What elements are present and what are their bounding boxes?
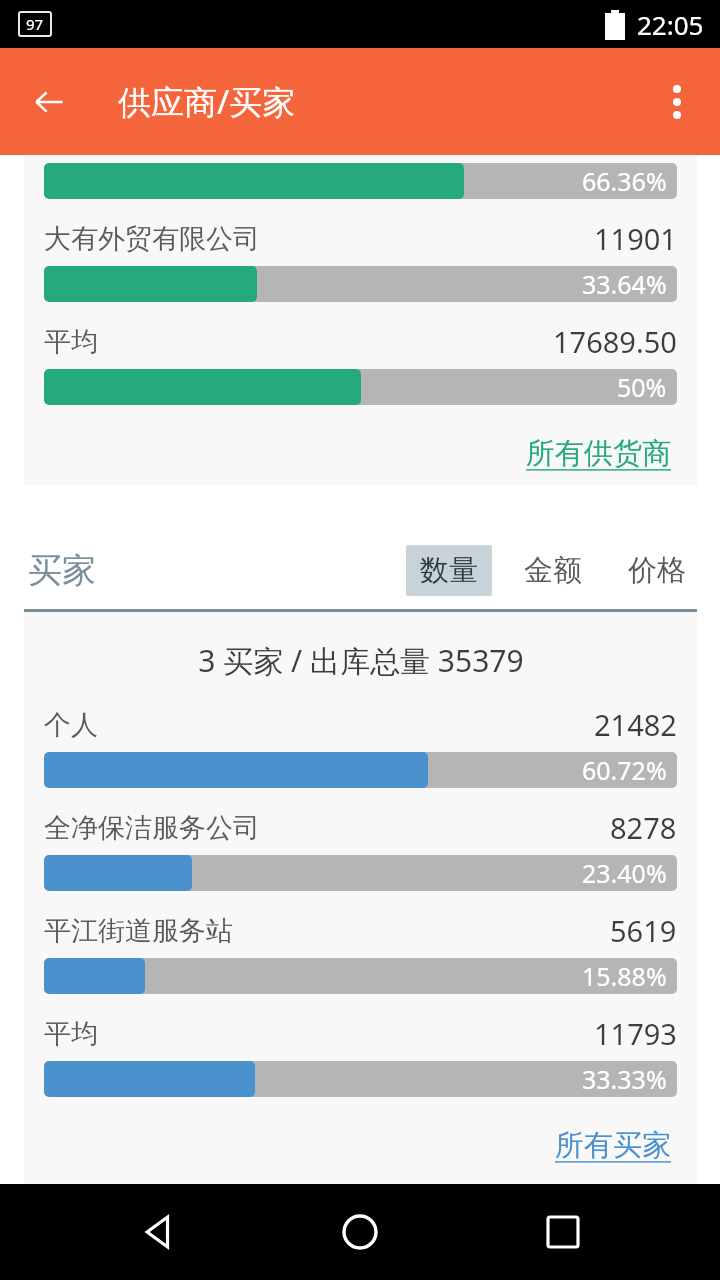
staticText: 50% [617, 370, 667, 404]
staticText: 11793 [594, 1014, 677, 1053]
staticText: 数量 [420, 552, 478, 589]
staticText: 33.33% [582, 1062, 667, 1096]
staticText: 金额 [524, 552, 582, 589]
staticText: 个人 [44, 708, 98, 742]
staticText: 21482 [594, 705, 677, 744]
staticText: 66.36% [582, 164, 667, 198]
staticText: 8278 [610, 808, 677, 847]
staticText: 60.72% [582, 753, 667, 787]
staticText: 平均 [44, 1017, 98, 1051]
button[interactable]: 所有买家 [551, 1123, 675, 1168]
staticText: 所有供货商 [526, 435, 671, 472]
staticText: 97 [26, 14, 44, 34]
staticText: 买家 [28, 549, 96, 592]
button[interactable]: 所有供货商 [522, 431, 675, 476]
staticText: 3 买家 / 出库总量 35379 [198, 640, 524, 681]
staticText: 平均 [44, 325, 98, 359]
button[interactable]: 数量 [406, 545, 492, 596]
staticText: 全净保洁服务公司 [44, 811, 260, 845]
staticText: 15.88% [582, 959, 667, 993]
staticText: 所有买家 [555, 1127, 671, 1164]
button[interactable]: Back [20, 73, 78, 131]
staticText: 供应商/买家 [118, 79, 296, 124]
button[interactable]: More options [648, 73, 706, 131]
button[interactable]: 金额 [510, 545, 596, 596]
staticText: 11901 [594, 219, 677, 258]
staticText: 大有外贸有限公司 [44, 222, 260, 256]
staticText: 17689.50 [553, 322, 677, 361]
staticText: 23.40% [582, 856, 667, 890]
staticText: 22:05 [637, 7, 704, 42]
staticText: 平江街道服务站 [44, 914, 233, 948]
button[interactable]: Recent apps [518, 1187, 608, 1277]
button[interactable]: Back [113, 1187, 203, 1277]
staticText: 价格 [628, 552, 686, 589]
button[interactable]: Home [315, 1187, 405, 1277]
staticText: 33.64% [582, 267, 667, 301]
button[interactable]: 价格 [614, 545, 700, 596]
staticText: 5619 [610, 911, 677, 950]
